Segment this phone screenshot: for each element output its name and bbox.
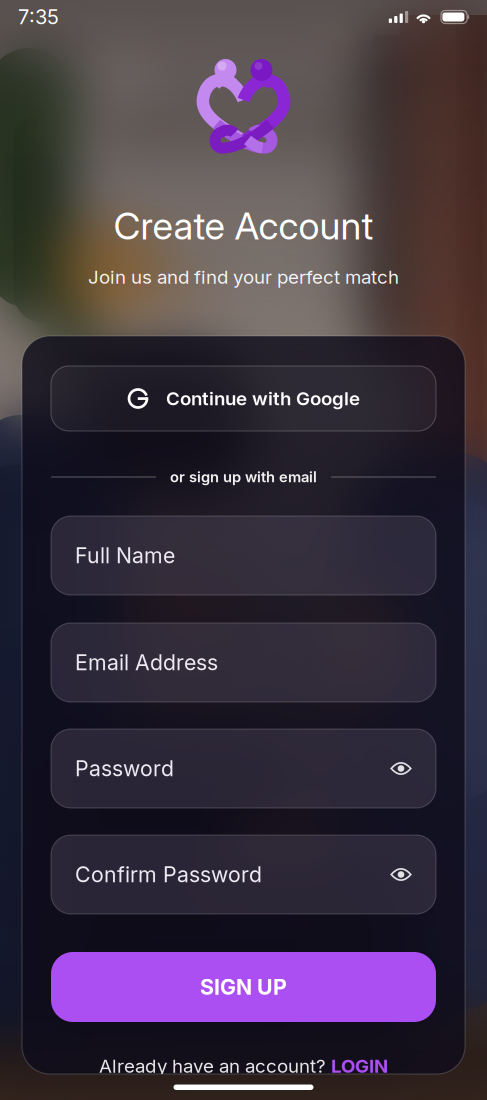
staticText: Full Name (75, 543, 175, 568)
staticText: Already have an account? (99, 1055, 331, 1077)
staticText: Confirm Password (75, 862, 262, 887)
button[interactable]: Email Address (51, 623, 436, 702)
staticText: or sign up with email (170, 468, 317, 486)
staticText: Password (75, 756, 174, 781)
button[interactable]: Full Name (51, 516, 436, 595)
button[interactable]: SIGN UP (51, 952, 436, 1022)
staticText: LOGIN (331, 1055, 388, 1077)
button[interactable]: Confirm Password (51, 835, 436, 914)
button[interactable]: Already have an account? (51, 1051, 436, 1081)
button[interactable]: Continue with Google (51, 366, 436, 431)
staticText: Create Account (113, 204, 373, 248)
staticText: Email Address (75, 650, 218, 675)
staticText: 7:35 (18, 5, 59, 29)
staticText: Join us and find your perfect match (88, 266, 399, 288)
staticText: Continue with Google (166, 387, 360, 409)
staticText: SIGN UP (200, 974, 287, 1000)
button[interactable]: Password (51, 729, 436, 808)
